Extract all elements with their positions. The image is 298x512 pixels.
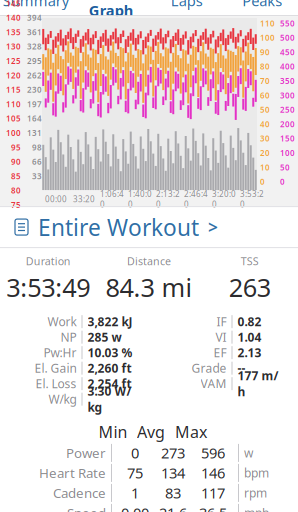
staticText: 450 bbox=[280, 47, 295, 57]
staticText: w bbox=[244, 445, 253, 461]
staticText: Avg bbox=[137, 421, 165, 442]
staticText: -- bbox=[237, 360, 245, 376]
staticText: W/kg bbox=[48, 391, 76, 407]
staticText: Entire Workout bbox=[38, 212, 199, 242]
staticText: El. Loss bbox=[35, 376, 76, 392]
staticText: 00:00 bbox=[45, 194, 67, 204]
staticText: 1.04 bbox=[237, 329, 261, 345]
staticText: 150 bbox=[280, 133, 295, 144]
staticText: 550 bbox=[280, 18, 295, 29]
staticText: 33 bbox=[32, 171, 42, 181]
staticText: 125 bbox=[6, 56, 21, 66]
staticText: 130 bbox=[6, 41, 21, 52]
staticText: 10.03 % bbox=[87, 345, 132, 361]
staticText: 120 bbox=[6, 70, 21, 81]
staticText: 0 bbox=[260, 176, 265, 187]
staticText: Distance bbox=[127, 254, 171, 268]
staticText: 146 bbox=[201, 463, 225, 483]
staticText: 85 bbox=[11, 171, 21, 181]
button[interactable]: Laps bbox=[149, 0, 224, 15]
staticText: > bbox=[208, 216, 218, 239]
staticText: 164 bbox=[27, 113, 42, 124]
staticText: 83 bbox=[165, 483, 181, 503]
staticText: Map/Graph bbox=[89, 0, 134, 20]
staticText: Work bbox=[47, 314, 76, 330]
staticText: 145 bbox=[6, 0, 21, 9]
staticText: 66 bbox=[32, 156, 42, 167]
button[interactable]: Entire Workout bbox=[0, 207, 298, 247]
staticText: Power bbox=[66, 444, 106, 462]
staticText: 1:40:00 bbox=[128, 188, 152, 210]
staticText: 75 bbox=[127, 463, 143, 483]
staticText: 3:20:00 bbox=[212, 188, 236, 210]
staticText: 400 bbox=[280, 61, 295, 72]
staticText: El. Gain bbox=[34, 360, 76, 376]
staticText: 33:20 bbox=[73, 194, 95, 204]
staticText: 90 bbox=[11, 156, 21, 167]
button[interactable]: Summary bbox=[0, 0, 73, 15]
staticText: 1:06:40 bbox=[100, 188, 124, 210]
staticText: 98 bbox=[32, 142, 42, 153]
staticText: 295 bbox=[27, 56, 42, 66]
staticText: 20 bbox=[260, 148, 270, 158]
staticText: 75 bbox=[11, 200, 21, 210]
staticText: 250 bbox=[280, 104, 295, 115]
staticText: Laps bbox=[171, 0, 203, 10]
staticText: 3:53:20 bbox=[240, 188, 264, 210]
staticText: Speed bbox=[67, 504, 106, 512]
staticText: 84.3 mi bbox=[105, 270, 192, 304]
staticText: IF bbox=[216, 314, 226, 330]
staticText: 328 bbox=[27, 41, 42, 52]
staticText: 3,822 kJ bbox=[87, 314, 132, 330]
staticText: Grade bbox=[191, 360, 226, 376]
staticText: Duration bbox=[26, 254, 71, 268]
staticText: 2.13 bbox=[237, 345, 261, 361]
staticText: 40 bbox=[260, 119, 270, 129]
staticText: 135 bbox=[6, 27, 21, 37]
staticText: 273 bbox=[161, 443, 185, 463]
staticText: NP bbox=[60, 329, 76, 345]
staticText: 0.00 bbox=[121, 503, 149, 512]
staticText: 361 bbox=[27, 27, 42, 37]
staticText: EF bbox=[213, 345, 226, 361]
staticText: Min bbox=[98, 421, 127, 442]
staticText: Max bbox=[175, 421, 207, 442]
staticText: VAM bbox=[200, 376, 226, 392]
staticText: 110 bbox=[6, 99, 21, 109]
staticText: Pw:Hr bbox=[43, 345, 76, 361]
staticText: 105 bbox=[6, 113, 21, 124]
staticText: 50 bbox=[260, 104, 270, 115]
staticText: 262 bbox=[27, 70, 42, 81]
staticText: 140 bbox=[6, 12, 21, 23]
button[interactable]: Map/Graph bbox=[73, 0, 149, 15]
staticText: 95 bbox=[11, 142, 21, 153]
staticText: 230 bbox=[27, 84, 42, 95]
staticText: 263 bbox=[229, 270, 271, 304]
staticText: 90 bbox=[260, 47, 270, 57]
staticText: 300 bbox=[280, 90, 295, 101]
staticText: 80 bbox=[260, 61, 270, 72]
staticText: 115 bbox=[6, 84, 21, 95]
staticText: TSS bbox=[241, 254, 259, 268]
staticText: 134 bbox=[161, 463, 185, 483]
staticText: Cadence bbox=[53, 484, 106, 502]
staticText: 10 bbox=[260, 162, 270, 173]
staticText: 100 bbox=[6, 128, 21, 138]
staticText: 2,254 ft bbox=[87, 376, 131, 392]
staticText: 0 bbox=[131, 443, 139, 463]
staticText: 177 m/h bbox=[237, 368, 278, 400]
staticText: 2:46:40 bbox=[184, 188, 208, 210]
staticText: 0 bbox=[280, 176, 285, 187]
staticText: 50 bbox=[280, 162, 290, 173]
staticText: Heart Rate bbox=[39, 464, 106, 482]
staticText: 3.30 W/kg bbox=[87, 383, 131, 415]
staticText: 3:53:49 bbox=[6, 270, 90, 304]
staticText: bpm bbox=[244, 465, 269, 481]
staticText: 110 bbox=[260, 18, 275, 29]
staticText: 2,260 ft bbox=[87, 360, 131, 376]
staticText: 36.5 bbox=[199, 503, 227, 512]
staticText: 60 bbox=[260, 90, 270, 101]
staticText: 285 w bbox=[87, 329, 121, 345]
button[interactable]: Peaks bbox=[224, 0, 298, 15]
staticText: 80 bbox=[11, 185, 21, 196]
